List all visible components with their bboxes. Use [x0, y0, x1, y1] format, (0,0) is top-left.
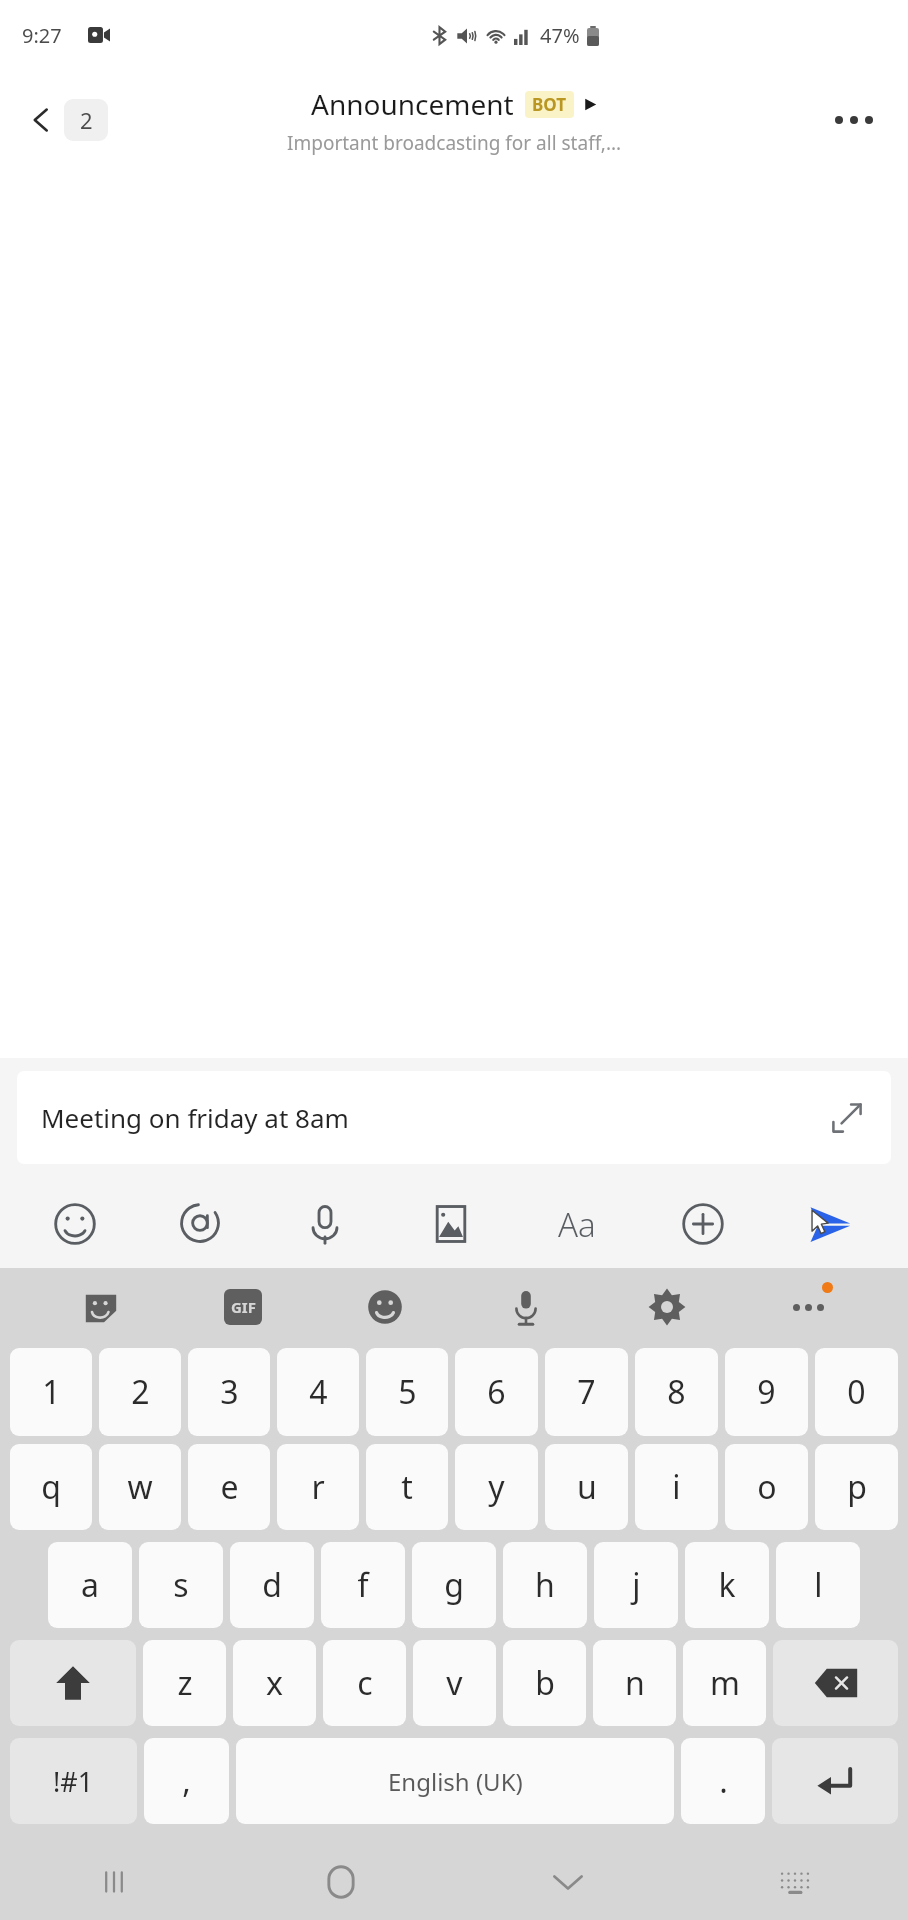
button[interactable]: i	[635, 1444, 718, 1530]
button[interactable]: g	[412, 1542, 496, 1628]
button[interactable]: u	[545, 1444, 628, 1530]
button[interactable]: z	[143, 1640, 226, 1726]
button[interactable]: Back, 2 unread	[22, 93, 114, 147]
button[interactable]: 7	[545, 1348, 628, 1436]
button[interactable]: Home	[227, 1844, 454, 1920]
button[interactable]: Voice input	[455, 1268, 596, 1346]
staticText: English (UK)	[388, 1765, 523, 1798]
staticText: t	[401, 1465, 413, 1509]
button[interactable]: 0	[815, 1348, 898, 1436]
button[interactable]: p	[815, 1444, 898, 1530]
button[interactable]: Image	[388, 1180, 514, 1268]
button[interactable]: x	[233, 1640, 316, 1726]
button[interactable]: 4	[277, 1348, 359, 1436]
button[interactable]: n	[593, 1640, 676, 1726]
button[interactable]: Backspace	[773, 1640, 898, 1726]
button[interactable]: s	[139, 1542, 223, 1628]
staticText: Important broadcasting for all staff,...	[287, 130, 622, 156]
staticText: r	[311, 1465, 325, 1509]
staticText: 3	[220, 1370, 239, 1414]
staticText: x	[266, 1661, 283, 1705]
staticText: v	[446, 1661, 463, 1705]
button[interactable]: Voice message	[262, 1180, 388, 1268]
button[interactable]: Add	[640, 1180, 766, 1268]
button[interactable]: y	[455, 1444, 538, 1530]
staticText: 2	[131, 1370, 150, 1414]
staticText: q	[41, 1465, 61, 1509]
button[interactable]: Enter	[772, 1738, 898, 1824]
button[interactable]: ,	[144, 1738, 229, 1824]
staticText: 9	[757, 1370, 776, 1414]
staticText: 4	[309, 1370, 328, 1414]
button[interactable]: e	[188, 1444, 270, 1530]
button[interactable]: l	[776, 1542, 860, 1628]
button[interactable]: 8	[635, 1348, 718, 1436]
button[interactable]: Text format	[514, 1180, 640, 1268]
staticText: u	[577, 1465, 597, 1509]
button[interactable]: m	[683, 1640, 766, 1726]
staticText: b	[535, 1661, 555, 1705]
button[interactable]: Hide keyboard	[454, 1844, 681, 1920]
button[interactable]: Keyboard layout	[681, 1844, 908, 1920]
staticText: h	[535, 1563, 555, 1607]
staticText: a	[81, 1563, 99, 1607]
staticText: e	[220, 1465, 239, 1509]
button[interactable]: Recent apps	[0, 1844, 227, 1920]
staticText: 47%	[540, 22, 580, 49]
button[interactable]: c	[323, 1640, 406, 1726]
button[interactable]: Stickers	[30, 1268, 172, 1346]
button[interactable]: t	[366, 1444, 448, 1530]
button[interactable]: Expand	[825, 1096, 869, 1140]
staticText: o	[757, 1465, 777, 1509]
staticText: i	[672, 1465, 681, 1509]
button[interactable]: q	[10, 1444, 92, 1530]
staticText: 2	[80, 105, 93, 135]
button[interactable]: More	[737, 1268, 878, 1346]
button[interactable]: Meeting on friday at 8am	[17, 1071, 891, 1164]
button[interactable]: Emoji	[314, 1268, 455, 1346]
button[interactable]: f	[321, 1542, 405, 1628]
button[interactable]: w	[99, 1444, 181, 1530]
staticText: Aa	[558, 1202, 596, 1247]
button[interactable]: !#1	[10, 1738, 137, 1824]
button[interactable]: Emoji	[12, 1180, 137, 1268]
button[interactable]: Send	[766, 1180, 892, 1268]
button[interactable]: d	[230, 1542, 314, 1628]
button[interactable]: English (UK)	[236, 1738, 674, 1824]
staticText: w	[127, 1465, 153, 1509]
button[interactable]: More options	[824, 90, 884, 150]
button[interactable]: o	[725, 1444, 808, 1530]
button[interactable]: 6	[455, 1348, 538, 1436]
staticText: GIF	[231, 1297, 256, 1317]
staticText: ,	[182, 1759, 191, 1803]
button[interactable]: Mention	[137, 1180, 262, 1268]
staticText: y	[488, 1465, 505, 1509]
button[interactable]: a	[48, 1542, 132, 1628]
button[interactable]: Settings	[596, 1268, 737, 1346]
staticText: 8	[667, 1370, 686, 1414]
staticText: Meeting on friday at 8am	[41, 1100, 349, 1135]
button[interactable]: v	[413, 1640, 496, 1726]
button[interactable]: 3	[188, 1348, 270, 1436]
button[interactable]: Shift	[10, 1640, 136, 1726]
staticText: f	[357, 1563, 369, 1607]
button[interactable]: k	[685, 1542, 769, 1628]
button[interactable]: .	[681, 1738, 765, 1824]
button[interactable]: 9	[725, 1348, 808, 1436]
button[interactable]: GIF	[172, 1268, 314, 1346]
staticText: 0	[847, 1370, 866, 1414]
staticText: .	[719, 1759, 728, 1803]
staticText: n	[625, 1661, 645, 1705]
button[interactable]: j	[594, 1542, 678, 1628]
button[interactable]: h	[503, 1542, 587, 1628]
staticText: 9:27	[22, 22, 62, 49]
staticText: 5	[398, 1370, 417, 1414]
staticText: !#1	[53, 1763, 94, 1800]
button[interactable]: 1	[10, 1348, 92, 1436]
staticText: p	[847, 1465, 867, 1509]
button[interactable]: r	[277, 1444, 359, 1530]
button[interactable]: b	[503, 1640, 586, 1726]
button[interactable]: 5	[366, 1348, 448, 1436]
staticText: j	[632, 1563, 641, 1607]
button[interactable]: 2	[99, 1348, 181, 1436]
